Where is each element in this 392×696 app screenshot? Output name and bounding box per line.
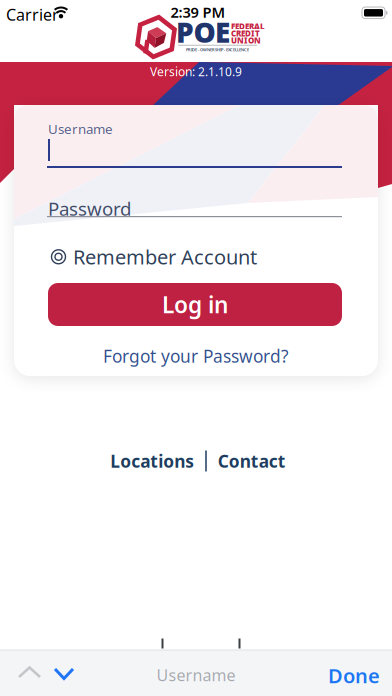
- staticText: 2:39 PM: [170, 2, 225, 22]
- button[interactable]: Next field: [54, 667, 74, 680]
- button[interactable]: Password: [47, 189, 342, 219]
- button[interactable]: Log in: [48, 283, 342, 326]
- staticText: Version: 2.1.10.9: [150, 63, 242, 79]
- staticText: Remember Account: [73, 243, 257, 270]
- staticText: Locations: [110, 449, 194, 472]
- staticText: Carrier: [6, 4, 59, 25]
- button[interactable]: Locations: [110, 449, 194, 472]
- staticText: PRIDE - OWNERSHIP - EXCELLENCE: [186, 47, 249, 52]
- staticText: Log in: [162, 289, 228, 319]
- button[interactable]: Username: [47, 115, 342, 173]
- button[interactable]: Previous field: [18, 666, 41, 679]
- staticText: Forgot your Password?: [103, 344, 289, 367]
- staticText: Password: [48, 196, 131, 221]
- staticText: Username: [156, 664, 235, 686]
- staticText: Done: [328, 662, 380, 689]
- button[interactable]: Forgot your Password?: [103, 344, 289, 367]
- button[interactable]: Contact: [218, 449, 286, 472]
- staticText: UNION: [231, 35, 261, 46]
- button[interactable]: Remember Account: [51, 243, 257, 270]
- staticText: Username: [48, 120, 113, 138]
- button[interactable]: Done: [328, 662, 380, 689]
- staticText: FEDERAL: [231, 21, 265, 32]
- staticText: CREDIT: [231, 28, 260, 39]
- staticText: Contact: [218, 449, 286, 472]
- staticText: POE: [176, 13, 230, 51]
